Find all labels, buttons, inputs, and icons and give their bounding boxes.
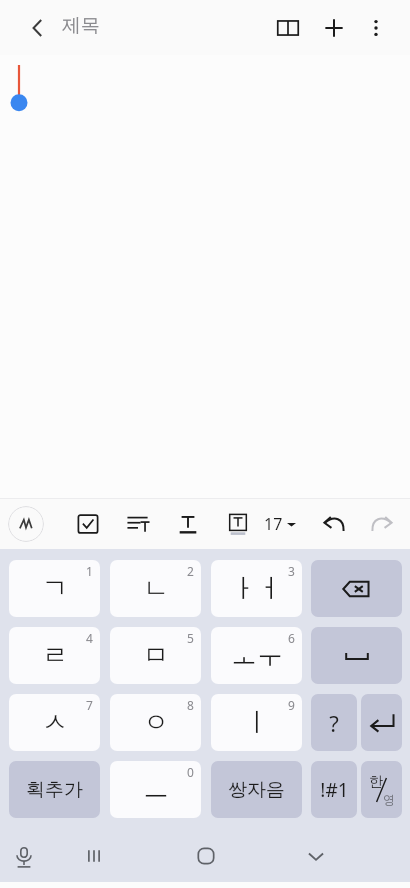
button[interactable]: Enter — [361, 694, 402, 751]
button[interactable]: ㄱ — [9, 560, 100, 617]
staticText: 0 — [187, 764, 194, 780]
staticText: 제목 — [62, 14, 100, 38]
button[interactable]: ㄴ — [110, 560, 201, 617]
button[interactable]: Paragraph style — [122, 508, 154, 540]
staticText: 6 — [288, 630, 295, 646]
staticText: 4 — [86, 630, 93, 646]
staticText: ㅇ — [143, 706, 169, 739]
button[interactable]: Back — [22, 12, 54, 44]
staticText: 9 — [288, 697, 295, 713]
button[interactable]: ㅗㅜ — [211, 627, 302, 684]
button[interactable]: Recents — [78, 840, 110, 872]
button[interactable]: 획추가 — [9, 761, 100, 818]
button[interactable]: ㅣ — [211, 694, 302, 751]
staticText: ㅣ — [244, 706, 270, 739]
button[interactable]: More options — [360, 12, 392, 44]
button[interactable]: ㅅ — [9, 694, 100, 751]
button[interactable]: Korean English toggle — [361, 761, 402, 818]
staticText: 영 — [383, 792, 395, 807]
staticText: ㅁ — [143, 639, 169, 672]
button[interactable]: Text box — [222, 508, 254, 540]
button[interactable]: Reading mode — [272, 12, 304, 44]
button[interactable]: Undo — [318, 508, 350, 540]
button[interactable]: Text format — [172, 508, 204, 540]
button[interactable]: ? — [311, 694, 357, 751]
staticText: 한 — [369, 773, 383, 791]
staticText: 1 — [86, 563, 93, 579]
button[interactable]: Hide keyboard — [300, 840, 332, 872]
button[interactable]: 쌍자음 — [211, 761, 302, 818]
button[interactable]: Voice input — [8, 840, 40, 872]
button[interactable]: ㅇ — [110, 694, 201, 751]
button[interactable]: Home — [190, 840, 222, 872]
staticText: 획추가 — [26, 778, 83, 802]
staticText: 7 — [86, 697, 93, 713]
staticText: 5 — [187, 630, 194, 646]
staticText: ㄴ — [143, 572, 169, 605]
button[interactable]: ㅁ — [110, 627, 201, 684]
staticText: !#1 — [320, 777, 349, 803]
button[interactable]: ㄹ — [9, 627, 100, 684]
button[interactable]: ㅏㅓ — [211, 560, 302, 617]
button[interactable]: Checklist — [72, 508, 104, 540]
button[interactable]: Handwriting — [8, 506, 44, 542]
button[interactable]: Backspace — [311, 560, 402, 617]
button[interactable]: 17 — [264, 510, 296, 538]
staticText: 쌍자음 — [228, 778, 285, 802]
staticText: ㅅ — [42, 706, 68, 739]
button[interactable]: Space — [311, 627, 402, 684]
button[interactable]: Add — [318, 12, 350, 44]
staticText: ㄹ — [42, 639, 68, 672]
staticText: 2 — [187, 563, 194, 579]
staticText: ? — [329, 708, 339, 738]
staticText: 8 — [187, 697, 194, 713]
staticText: 17 — [264, 513, 283, 535]
staticText: ㄱ — [42, 572, 68, 605]
button[interactable]: Redo — [366, 508, 398, 540]
button[interactable]: ㅡ — [110, 761, 201, 818]
staticText: 3 — [288, 563, 295, 579]
staticText: ㅡ — [143, 773, 169, 806]
staticText: ㅏㅓ — [231, 572, 283, 605]
button[interactable]: !#1 — [311, 761, 357, 818]
staticText: ㅗㅜ — [231, 639, 283, 672]
